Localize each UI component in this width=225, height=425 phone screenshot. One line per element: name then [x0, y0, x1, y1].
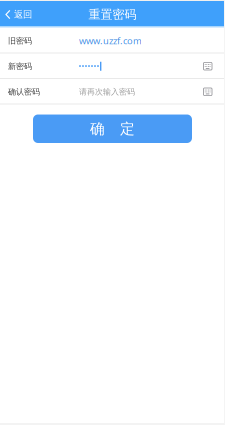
staticText: 旧密码 — [8, 36, 32, 46]
button[interactable]: 确认密码 — [0, 79, 203, 104]
button[interactable]: 新密码 — [0, 53, 203, 79]
button[interactable]: 确 定 — [33, 114, 192, 143]
button[interactable]: 旧密码 — [0, 28, 225, 53]
button[interactable]: Show keyboard — [203, 62, 225, 70]
staticText: 确 定 — [90, 120, 135, 138]
staticText: 新密码 — [8, 61, 32, 71]
staticText: 请再次输入密码 — [79, 87, 135, 97]
staticText: 返回 — [14, 9, 32, 20]
button[interactable]: Show keyboard — [203, 88, 225, 95]
staticText: 确认密码 — [8, 87, 40, 97]
staticText: 重置密码 — [88, 7, 136, 22]
button[interactable]: 返回 — [0, 1, 40, 28]
staticText: www.uzzf.com — [79, 35, 142, 47]
